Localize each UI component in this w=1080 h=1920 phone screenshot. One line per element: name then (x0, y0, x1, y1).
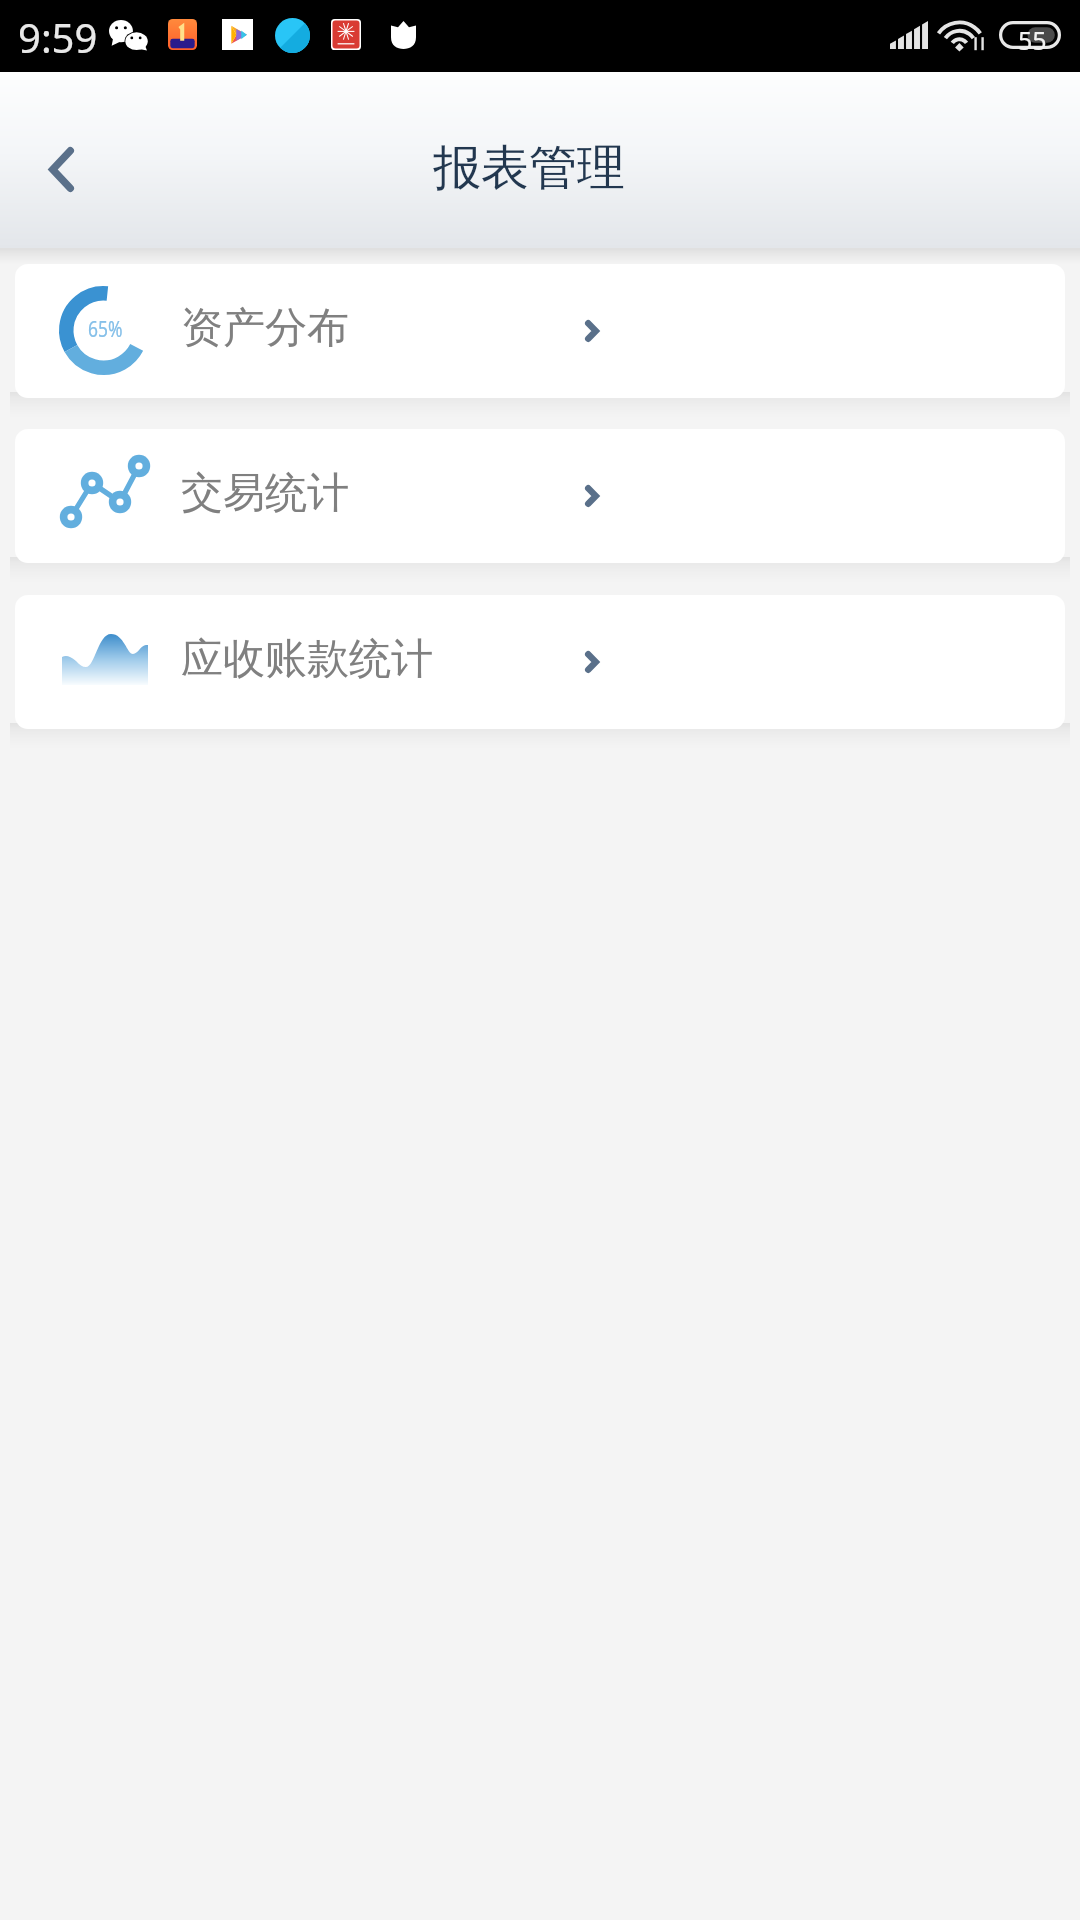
button[interactable]: 应收账款统计 (15, 595, 1065, 729)
button[interactable]: 65% (15, 264, 1065, 398)
staticText: 交易统计 (181, 467, 349, 520)
staticText: 65% (88, 315, 123, 344)
staticText: 55 (1018, 23, 1047, 51)
staticText: 应收账款统计 (181, 633, 433, 686)
button[interactable]: 交易统计 (15, 429, 1065, 563)
button[interactable]: Back (8, 72, 112, 248)
staticText: 9:59 (18, 10, 98, 64)
staticText: 报表管理 (433, 138, 625, 198)
staticText: 资产分布 (181, 302, 349, 355)
